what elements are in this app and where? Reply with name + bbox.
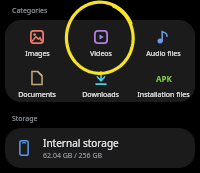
staticText: Documents	[18, 90, 56, 100]
button[interactable]: Downloads	[69, 67, 132, 102]
staticText: Internal storage	[43, 136, 119, 150]
button[interactable]: Images	[5, 26, 69, 61]
button[interactable]: Installation files	[132, 67, 195, 102]
staticText: Videos	[90, 49, 112, 59]
staticText: Categories	[12, 6, 48, 16]
staticText: APK	[156, 73, 172, 84]
staticText: 62.04 GB / 256 GB	[43, 151, 103, 161]
button[interactable]: Internal storage	[5, 128, 195, 168]
staticText: Audio files	[146, 49, 181, 59]
other: Videos	[92, 28, 110, 46]
other: Downloads	[92, 69, 110, 87]
button[interactable]: Audio files	[132, 26, 195, 61]
other: Internal storage	[15, 139, 33, 157]
staticText: Storage	[12, 114, 38, 124]
staticText: Images	[25, 49, 50, 59]
other: Images	[28, 28, 46, 46]
other: Installation files	[155, 69, 173, 87]
other: Audio files	[155, 28, 173, 46]
staticText: Installation files	[137, 90, 190, 100]
staticText: Downloads	[82, 90, 119, 100]
button[interactable]: Documents	[5, 67, 69, 102]
button[interactable]: Videos	[69, 26, 132, 61]
other: Documents	[28, 69, 46, 87]
